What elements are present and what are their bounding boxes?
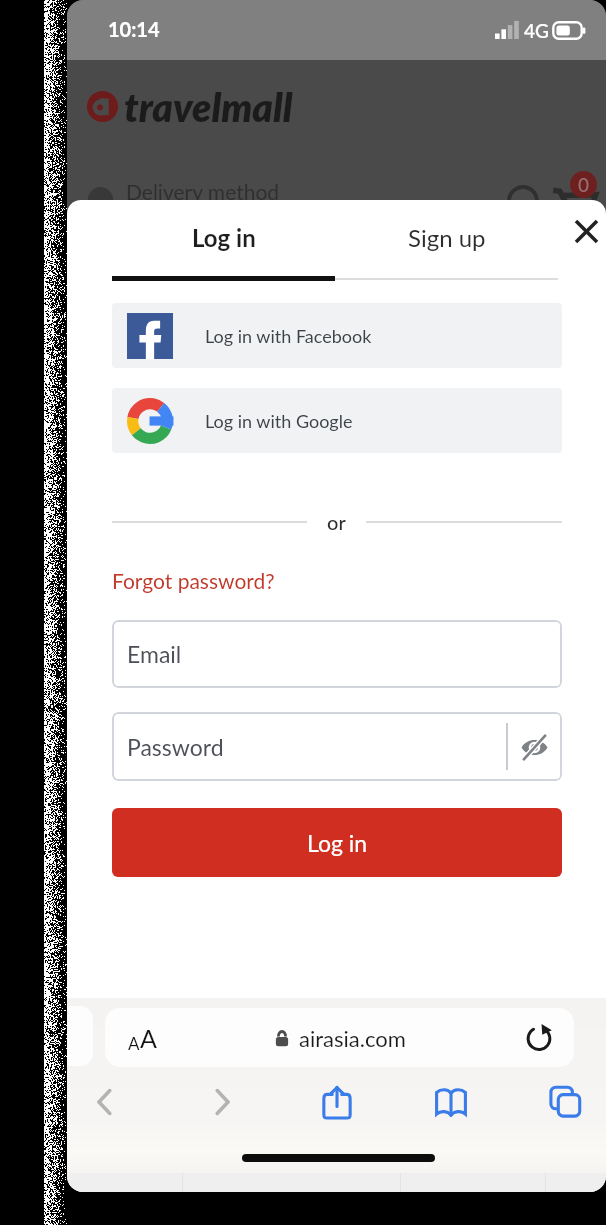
button[interactable]: Log in with Facebook bbox=[112, 303, 562, 368]
button[interactable]: Forward bbox=[198, 1078, 246, 1126]
staticText: Log in with Facebook bbox=[205, 325, 372, 347]
button[interactable]: Show password bbox=[510, 723, 558, 771]
staticText: 0 bbox=[578, 173, 590, 196]
button[interactable]: Tabs bbox=[541, 1078, 589, 1126]
button[interactable]: Forgot password? bbox=[112, 568, 275, 593]
button[interactable]: Page settings bbox=[105, 1008, 574, 1067]
staticText: Email bbox=[127, 640, 182, 668]
staticText: 4G bbox=[524, 19, 549, 42]
staticText: A bbox=[140, 1023, 157, 1053]
staticText: or bbox=[327, 510, 346, 534]
staticText: Sign up bbox=[408, 223, 486, 252]
staticText: airasia.com bbox=[299, 1025, 406, 1051]
staticText: Log in with Google bbox=[205, 410, 353, 432]
staticText: Log in bbox=[192, 223, 256, 252]
button[interactable]: Close bbox=[560, 205, 606, 257]
staticText: Log in bbox=[307, 829, 368, 857]
button[interactable]: Log in with Google bbox=[112, 388, 562, 453]
button[interactable]: Back bbox=[81, 1078, 129, 1126]
button[interactable]: Log in bbox=[112, 808, 562, 877]
button[interactable]: Bookmarks bbox=[427, 1078, 475, 1126]
staticText: A bbox=[128, 1033, 140, 1053]
button[interactable]: Email bbox=[112, 620, 562, 688]
staticText: travelmall bbox=[124, 84, 293, 131]
staticText: Password bbox=[127, 733, 224, 761]
button[interactable]: Share bbox=[313, 1078, 361, 1126]
button[interactable]: Reload bbox=[519, 1018, 559, 1058]
staticText: 10:14 bbox=[108, 17, 160, 41]
button[interactable]: Password bbox=[112, 712, 562, 781]
button[interactable]: Sign up bbox=[335, 200, 558, 275]
button[interactable]: Log in bbox=[112, 200, 335, 275]
button[interactable]: Page settings bbox=[125, 1021, 159, 1055]
staticText: Delivery method bbox=[126, 179, 280, 204]
